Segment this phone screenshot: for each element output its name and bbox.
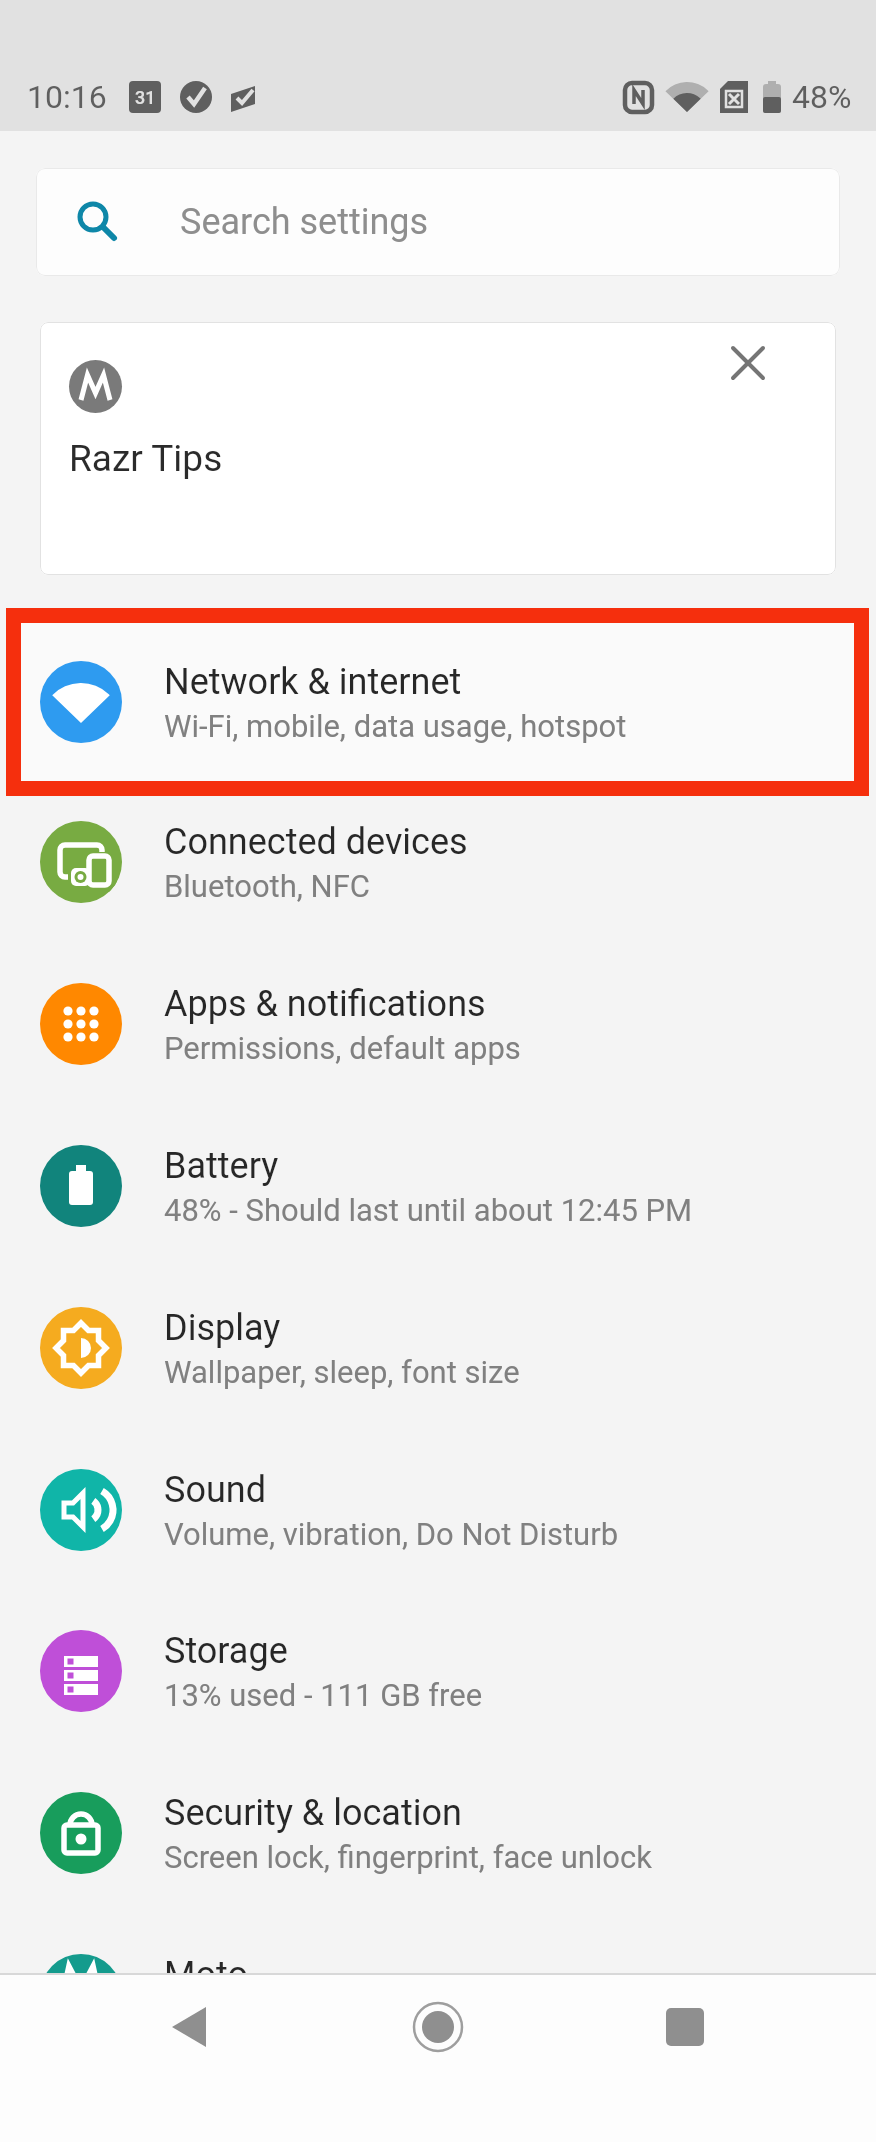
staticText: Volume, vibration, Do Not Disturb [164, 1516, 619, 1552]
button[interactable]: Security & location [0, 1752, 876, 1914]
staticText: Connected devices [164, 821, 468, 863]
staticText: Security & location [164, 1792, 462, 1834]
staticText: Wallpaper, sleep, font size [164, 1354, 520, 1390]
staticText: 10:16 [27, 78, 107, 116]
staticText: Battery [164, 1145, 279, 1187]
staticText: 48% - Should last until about 12:45 PM [164, 1192, 693, 1228]
staticText: Network & internet [164, 661, 462, 703]
staticText: Storage [164, 1630, 288, 1672]
button[interactable]: Search settings [36, 168, 840, 276]
staticText: Moto [164, 1954, 248, 1996]
button[interactable]: Connected devices [0, 781, 876, 943]
staticText: Wi-Fi, mobile, data usage, hotspot [164, 708, 627, 744]
button[interactable]: Battery [0, 1105, 876, 1267]
staticText: Bluetooth, NFC [164, 868, 371, 904]
staticText: Permissions, default apps [164, 1030, 521, 1066]
button[interactable]: Sound [0, 1429, 876, 1591]
staticText: Screen lock, fingerprint, face unlock [164, 1839, 652, 1875]
staticText: Sound [164, 1469, 266, 1511]
staticText: Search settings [180, 201, 429, 243]
staticText: Razr Tips [69, 437, 223, 480]
button[interactable]: Network & internet [21, 623, 854, 781]
button[interactable] [724, 339, 772, 387]
button[interactable]: Moto [0, 1914, 876, 2076]
staticText: 13% used - 111 GB free [164, 1677, 483, 1713]
button[interactable]: Storage [0, 1590, 876, 1752]
button[interactable]: Apps & notifications [0, 943, 876, 1105]
staticText: Apps & notifications [164, 983, 486, 1025]
staticText: Display [164, 1307, 281, 1349]
button[interactable] [655, 1997, 715, 2057]
staticText: 31 [135, 87, 156, 108]
button[interactable]: Display [0, 1267, 876, 1429]
button[interactable] [160, 1997, 220, 2057]
button[interactable] [408, 1997, 468, 2057]
staticText: 48% [792, 78, 852, 116]
